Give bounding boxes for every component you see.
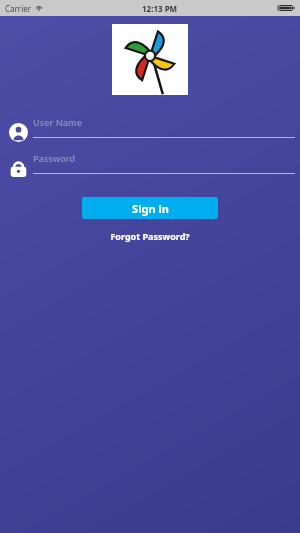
staticText: Password: [33, 152, 76, 164]
button[interactable]: User Name: [33, 116, 295, 138]
staticText: Carrier: [5, 3, 32, 14]
button[interactable]: Password: [33, 152, 295, 174]
button[interactable]: Forgot Password?: [104, 228, 196, 244]
staticText: User Name: [33, 116, 82, 128]
other: User name: [9, 123, 28, 142]
staticText: Sign in: [132, 201, 169, 216]
staticText: Forgot Password?: [110, 230, 190, 242]
staticText: 12:13 PM: [142, 3, 178, 14]
other: Password: [10, 160, 27, 177]
button[interactable]: Sign in: [82, 197, 218, 219]
